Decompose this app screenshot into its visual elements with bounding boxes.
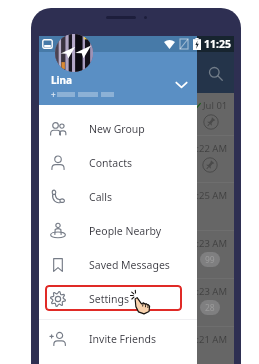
button[interactable]: Expand accounts — [172, 75, 190, 93]
button[interactable]: Invite Friends — [39, 322, 197, 356]
button[interactable]: Contacts — [39, 146, 197, 180]
staticText: 11:25 — [204, 37, 231, 51]
button[interactable]: 1:23 AM — [39, 231, 234, 279]
button[interactable]: 1:22 AM — [39, 136, 234, 183]
staticText: Settings — [89, 292, 129, 306]
staticText: People Nearby — [89, 224, 162, 238]
staticText: 1:23 AM — [191, 237, 228, 250]
button[interactable]: Profile picture — [55, 34, 93, 72]
staticText: 28 — [205, 302, 215, 314]
staticText: New Group — [89, 122, 145, 136]
staticText: Invite Friends — [89, 332, 156, 346]
staticText: Jul 01 — [203, 99, 228, 112]
button[interactable]: Search — [203, 61, 227, 85]
button[interactable]: People Nearby — [39, 214, 197, 248]
button[interactable]: New Group — [39, 112, 197, 146]
button[interactable]: 1:25 AM — [39, 183, 234, 231]
button[interactable]: 1:21 AM — [39, 327, 234, 364]
staticText: 1:23 AM — [191, 285, 228, 298]
staticText: 99 — [205, 254, 215, 266]
staticText: Lina — [51, 73, 73, 87]
staticText: Saved Messages — [89, 258, 170, 272]
staticText: Calls — [89, 190, 112, 204]
staticText: Contacts — [89, 156, 133, 170]
staticText: + — [51, 89, 56, 100]
staticText: 1:22 AM — [191, 142, 228, 155]
button[interactable]: 1:23 AM — [39, 279, 234, 327]
staticText: 1:21 AM — [191, 333, 228, 346]
button[interactable]: Calls — [39, 180, 197, 214]
button[interactable]: Settings — [39, 282, 197, 316]
button[interactable]: Saved Messages — [39, 248, 197, 282]
button[interactable]: Jul 01 — [39, 93, 234, 136]
staticText: 1:25 AM — [191, 189, 228, 202]
